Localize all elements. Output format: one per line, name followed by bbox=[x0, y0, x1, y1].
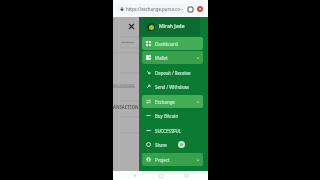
staticText: Deposit / Receive bbox=[155, 70, 200, 76]
staticText: Send / Withdraw bbox=[155, 84, 200, 90]
staticText: Share bbox=[155, 142, 200, 148]
staticText: SUCCESSFUL bbox=[155, 128, 200, 134]
button[interactable]: Send / Withdraw bbox=[142, 80, 203, 93]
button[interactable]: Close bbox=[126, 21, 137, 32]
button[interactable]: Exchange bbox=[142, 95, 203, 108]
button[interactable]: Mirah Jade bbox=[139, 17, 200, 36]
staticText: Mirah Jade bbox=[159, 23, 185, 30]
button[interactable]: Recents bbox=[182, 171, 191, 180]
button[interactable]: Tabs bbox=[186, 5, 194, 13]
button[interactable]: Project bbox=[142, 153, 203, 166]
staticText: ANSACTION bbox=[113, 104, 139, 110]
button[interactable]: SUCCESSFUL bbox=[142, 124, 203, 137]
button[interactable]: Wallet bbox=[142, 51, 203, 64]
button[interactable]: Dashboard bbox=[142, 37, 203, 50]
staticText: Exchange bbox=[155, 99, 196, 105]
button[interactable]: Account bbox=[196, 5, 204, 13]
staticText: Wallet bbox=[155, 55, 196, 61]
button[interactable]: Home bbox=[156, 171, 165, 180]
staticText: Project bbox=[155, 157, 196, 163]
button[interactable]: Deposit / Receive bbox=[142, 66, 203, 79]
staticText: Dashboard bbox=[155, 41, 200, 47]
button[interactable]: Back bbox=[130, 171, 139, 180]
button[interactable]: https://exchange.pursa.co bbox=[117, 4, 185, 14]
button[interactable]: Buy Bitcoin bbox=[142, 109, 203, 122]
staticText: ive settings bbox=[113, 82, 135, 87]
staticText: Buy Bitcoin bbox=[155, 113, 200, 119]
staticText: https://exchange.pursa.co bbox=[126, 6, 180, 12]
button[interactable]: Share bbox=[142, 138, 203, 151]
